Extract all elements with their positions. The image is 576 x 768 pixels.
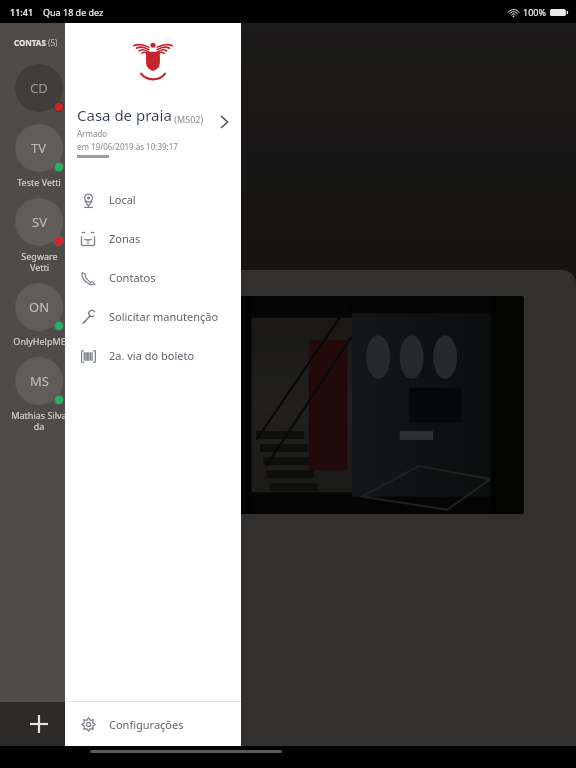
button[interactable]: CD [0, 58, 78, 118]
staticText: Segware Vetti [21, 250, 58, 273]
button[interactable]: TV [0, 118, 78, 192]
staticText: TV [31, 139, 47, 157]
staticText: em 19/06/2019 às 10:39:17 [26, 236, 153, 250]
staticText: (MS02) [172, 113, 204, 125]
button[interactable]: Panic [46, 550, 98, 602]
staticText: Mathias Silva da [11, 409, 67, 432]
button[interactable]: Add account [0, 702, 78, 746]
staticText: Configurações [109, 717, 184, 732]
staticText: Casa de praia [26, 181, 153, 208]
button[interactable]: MS [0, 351, 78, 436]
staticText: Armado [56, 215, 94, 229]
button[interactable]: Casa de praia [65, 105, 241, 158]
staticText: 100% [523, 6, 546, 18]
staticText: Casa de praia [77, 105, 172, 125]
staticText: Zonas [109, 231, 141, 246]
staticText: Armado [77, 128, 108, 139]
button[interactable]: Solicitar manutenção [65, 297, 241, 336]
staticText: em 19/06/2019 às 10:39:17 [77, 141, 178, 152]
staticText: MS [30, 372, 49, 390]
button[interactable]: ON [0, 277, 78, 351]
button[interactable]: Zonas [65, 219, 241, 258]
button[interactable]: Configurações [65, 702, 241, 746]
button[interactable]: SV [0, 192, 78, 277]
button[interactable]: Contatos [65, 258, 241, 297]
staticText: CD [52, 117, 81, 146]
staticText: Teste Vetti [17, 176, 61, 188]
staticText: 11:41 [10, 6, 34, 18]
staticText: Local [109, 192, 136, 207]
staticText: Qua 18 de dez [43, 6, 104, 18]
staticText: 2a. via do boleto [109, 348, 195, 363]
staticText: Contatos [109, 270, 156, 285]
staticText: OnlyHelpME [13, 335, 66, 347]
staticText: CONTAS [14, 37, 46, 48]
button[interactable]: 2a. via do boleto [65, 336, 241, 375]
staticText: Solicitar manutenção [109, 309, 219, 324]
button[interactable]: Local [65, 180, 241, 219]
staticText: ON [29, 298, 50, 316]
staticText: SV [32, 213, 47, 231]
staticText: (5) [46, 37, 58, 48]
staticText: CD [30, 79, 48, 97]
